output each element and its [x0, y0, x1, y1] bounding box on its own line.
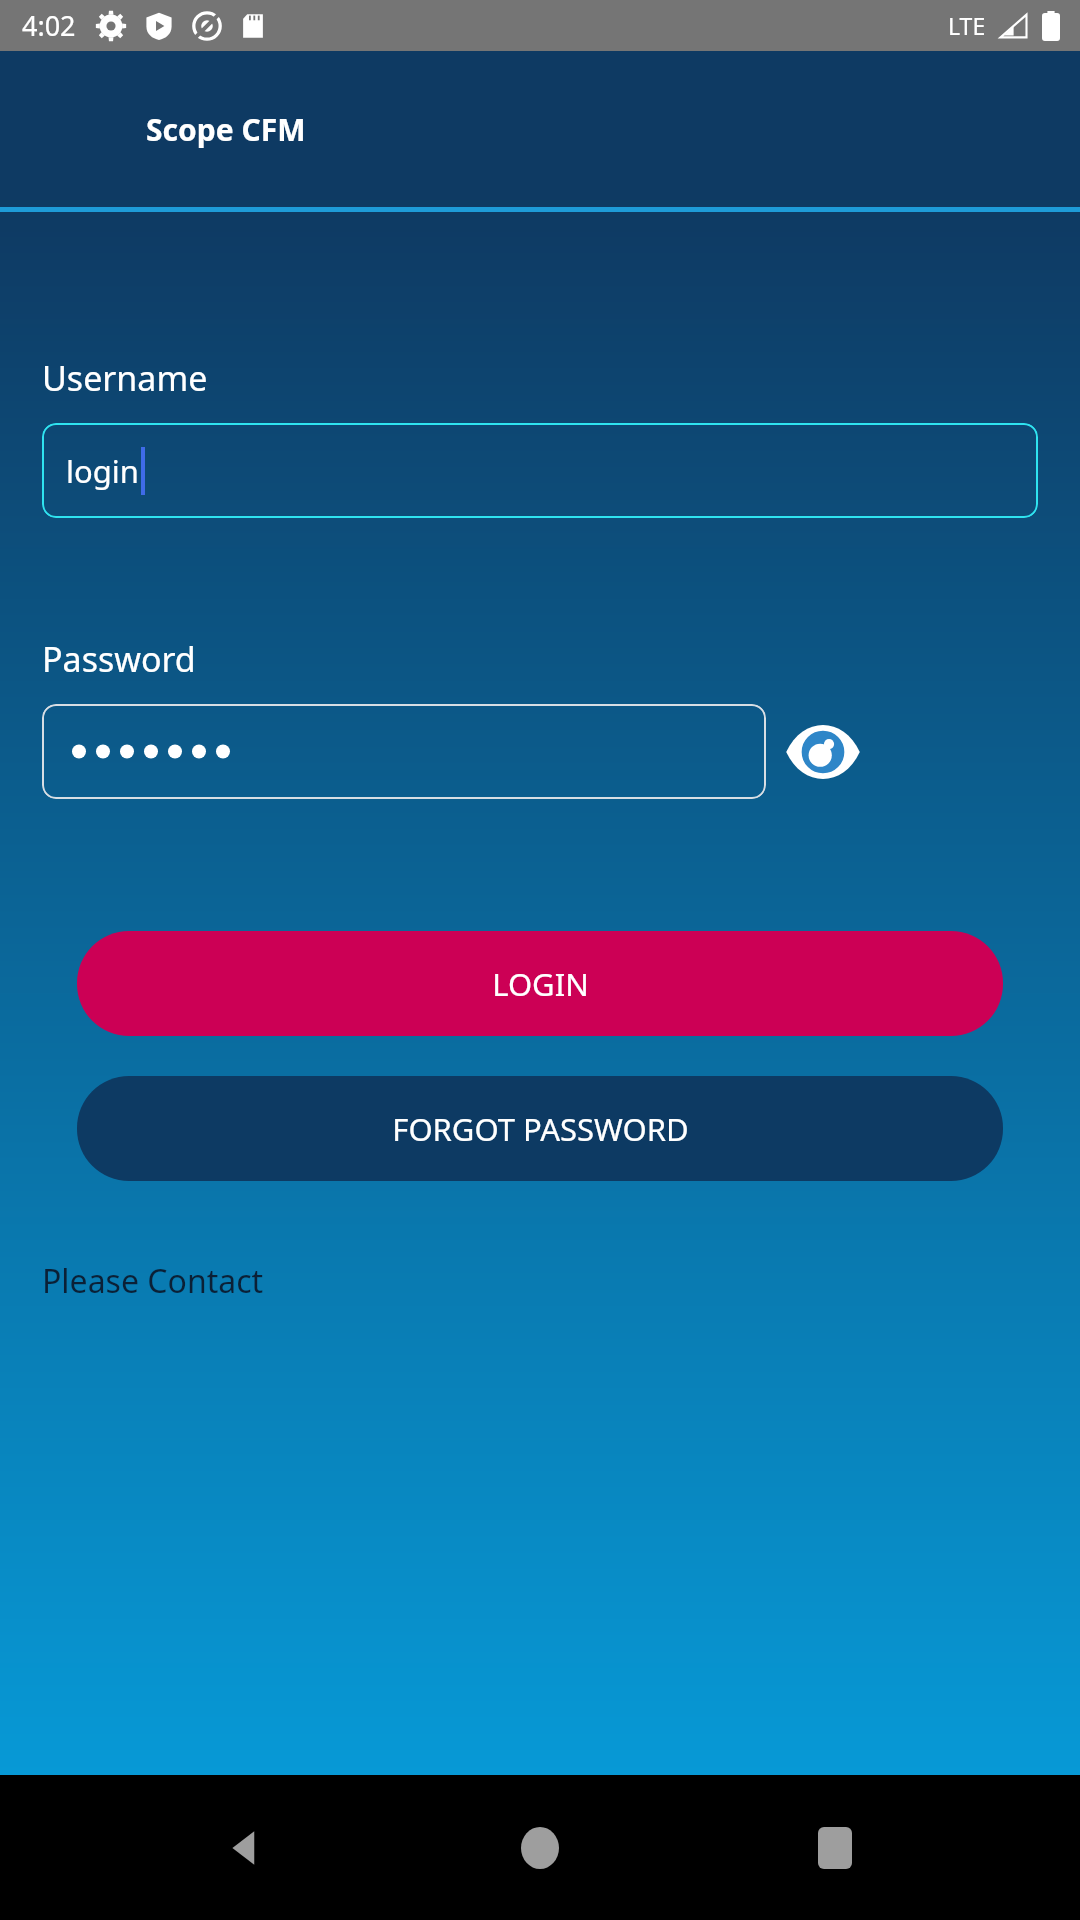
button[interactable]: LOGIN — [77, 931, 1003, 1036]
staticText: 4:02 — [22, 7, 76, 44]
button[interactable]: FORGOT PASSWORD — [77, 1076, 1003, 1181]
staticText: Username — [42, 355, 208, 401]
staticText: Scope CFM — [146, 109, 306, 150]
button[interactable]: Back — [195, 1798, 295, 1898]
staticText: LOGIN — [492, 963, 589, 1005]
button[interactable]: Show password — [780, 709, 866, 795]
staticText: LTE — [948, 10, 986, 41]
button[interactable]: Please Contact — [42, 1259, 264, 1303]
button[interactable] — [42, 704, 766, 799]
button[interactable]: Home — [490, 1798, 590, 1898]
button[interactable]: Recent apps — [785, 1798, 885, 1898]
staticText: FORGOT PASSWORD — [392, 1108, 689, 1150]
button[interactable]: login — [42, 423, 1038, 518]
staticText: Password — [42, 636, 196, 682]
staticText: login — [66, 450, 139, 492]
